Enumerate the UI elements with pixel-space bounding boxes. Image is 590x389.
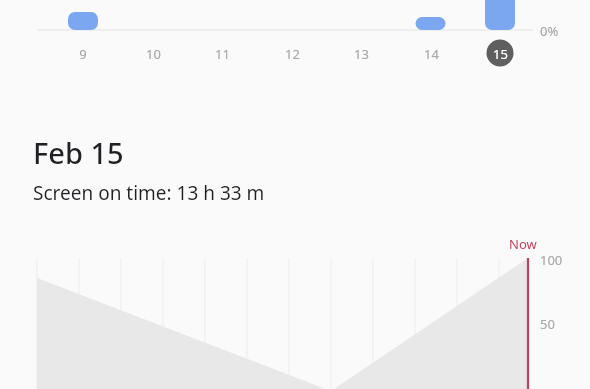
staticText: 10: [146, 45, 161, 63]
staticText: 12: [285, 45, 300, 63]
button[interactable]: 11: [202, 44, 242, 64]
staticText: Screen on time: 13 h 33 m: [33, 180, 265, 206]
button[interactable]: 9: [63, 44, 103, 64]
button[interactable]: 10: [133, 44, 173, 64]
staticText: 14: [424, 45, 439, 63]
button[interactable]: 15: [480, 44, 520, 64]
button[interactable]: 12: [272, 44, 312, 64]
staticText: 50: [540, 315, 555, 333]
staticText: 15: [493, 45, 508, 63]
staticText: Feb 15: [33, 133, 124, 172]
staticText: 100: [540, 251, 563, 269]
staticText: 11: [215, 45, 230, 63]
button[interactable]: 14: [411, 44, 451, 64]
staticText: Now: [509, 235, 537, 253]
staticText: 0%: [540, 22, 559, 40]
button[interactable]: 13: [341, 44, 381, 64]
button[interactable]: Battery level history chart: [0, 235, 590, 389]
button[interactable]: Battery usage bar chart: [0, 0, 590, 70]
staticText: 13: [354, 45, 369, 63]
staticText: 9: [79, 45, 87, 63]
